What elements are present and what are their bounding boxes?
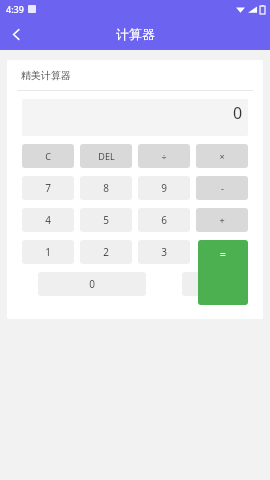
button[interactable]: Back: [0, 18, 32, 50]
staticText: 3: [161, 245, 167, 259]
staticText: +: [219, 214, 225, 226]
button[interactable]: =: [198, 240, 248, 305]
staticText: 4:39: [6, 3, 24, 15]
staticText: 9: [161, 181, 167, 195]
staticText: 7: [45, 181, 51, 195]
staticText: =: [220, 247, 226, 261]
button[interactable]: 9: [138, 176, 190, 200]
button[interactable]: ÷: [138, 144, 190, 168]
staticText: 计算器: [116, 26, 155, 42]
staticText: ×: [219, 150, 225, 162]
staticText: ÷: [161, 150, 167, 162]
button[interactable]: -: [196, 176, 248, 200]
button[interactable]: C: [22, 144, 74, 168]
button[interactable]: +: [196, 208, 248, 232]
button[interactable]: 7: [22, 176, 74, 200]
button[interactable]: 5: [80, 208, 132, 232]
staticText: 8: [103, 181, 109, 195]
staticText: 2: [103, 245, 109, 259]
button[interactable]: 1: [22, 240, 74, 264]
staticText: 1: [45, 245, 51, 259]
button[interactable]: 3: [138, 240, 190, 264]
staticText: 5: [103, 213, 109, 227]
staticText: 6: [161, 213, 167, 227]
staticText: 0: [89, 277, 95, 291]
button[interactable]: 8: [80, 176, 132, 200]
button[interactable]: .: [182, 272, 234, 296]
staticText: DEL: [98, 150, 115, 162]
button[interactable]: 6: [138, 208, 190, 232]
staticText: C: [45, 150, 51, 162]
button[interactable]: 2: [80, 240, 132, 264]
staticText: 0: [233, 102, 243, 124]
staticText: 4: [45, 213, 51, 227]
button[interactable]: 0: [38, 272, 146, 296]
button[interactable]: ×: [196, 144, 248, 168]
staticText: 精美计算器: [21, 69, 71, 82]
button[interactable]: 4: [22, 208, 74, 232]
button[interactable]: DEL: [80, 144, 132, 168]
staticText: -: [221, 182, 224, 194]
